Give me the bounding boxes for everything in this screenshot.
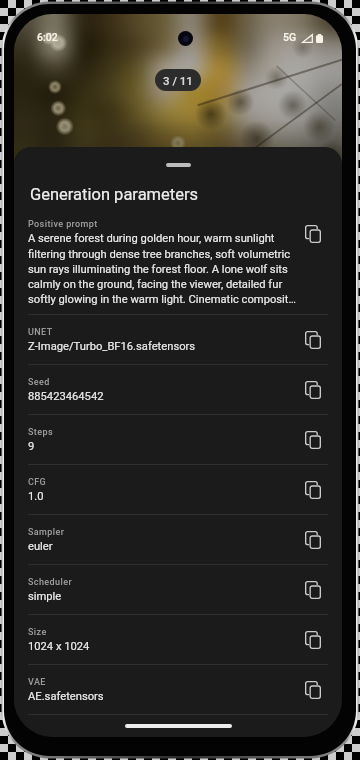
staticText: 1.0 xyxy=(28,490,44,503)
staticText: Steps xyxy=(28,427,53,438)
staticText: Z-Image/Turbo_BF16.safetensors xyxy=(28,340,196,353)
staticText: Size xyxy=(28,627,47,638)
button[interactable]: UNET xyxy=(14,315,342,364)
button[interactable]: Copy xyxy=(298,475,328,505)
staticText: 9 xyxy=(28,440,35,453)
staticText: Generation parameters xyxy=(30,185,199,204)
staticText: simple xyxy=(28,590,62,603)
button[interactable]: Copy xyxy=(298,575,328,605)
staticText: 1024 x 1024 xyxy=(28,640,90,653)
button[interactable]: Copy xyxy=(298,325,328,355)
staticText: 885423464542 xyxy=(28,390,104,403)
button[interactable]: Copy xyxy=(298,375,328,405)
staticText: CFG xyxy=(28,477,47,488)
button[interactable]: Positive prompt xyxy=(14,215,342,306)
button[interactable]: Size xyxy=(14,615,342,664)
button[interactable]: Seed xyxy=(14,365,342,414)
staticText: 3 / 11 xyxy=(163,74,193,87)
button[interactable]: CFG xyxy=(14,465,342,514)
button[interactable]: Scheduler xyxy=(14,565,342,614)
button[interactable]: 3 / 11 xyxy=(155,69,201,91)
button[interactable]: Copy xyxy=(298,425,328,455)
staticText: VAE xyxy=(28,677,46,688)
button[interactable]: VAE xyxy=(14,665,342,714)
button[interactable]: Copy xyxy=(298,219,328,249)
button[interactable]: Copy xyxy=(298,625,328,655)
staticText: A serene forest during golden hour, warm… xyxy=(28,232,296,306)
staticText: Positive prompt xyxy=(28,219,98,230)
staticText: Scheduler xyxy=(28,577,72,588)
staticText: Sampler xyxy=(28,527,65,538)
staticText: AE.safetensors xyxy=(28,690,104,703)
staticText: UNET xyxy=(28,327,53,338)
button[interactable]: Steps xyxy=(14,415,342,464)
staticText: 6:02 xyxy=(37,31,58,43)
staticText: Seed xyxy=(28,377,50,388)
button[interactable]: Copy xyxy=(298,675,328,705)
staticText: 5G xyxy=(283,31,297,43)
button[interactable]: Sampler xyxy=(14,515,342,564)
staticText: euler xyxy=(28,540,53,553)
button[interactable]: Copy xyxy=(298,525,328,555)
